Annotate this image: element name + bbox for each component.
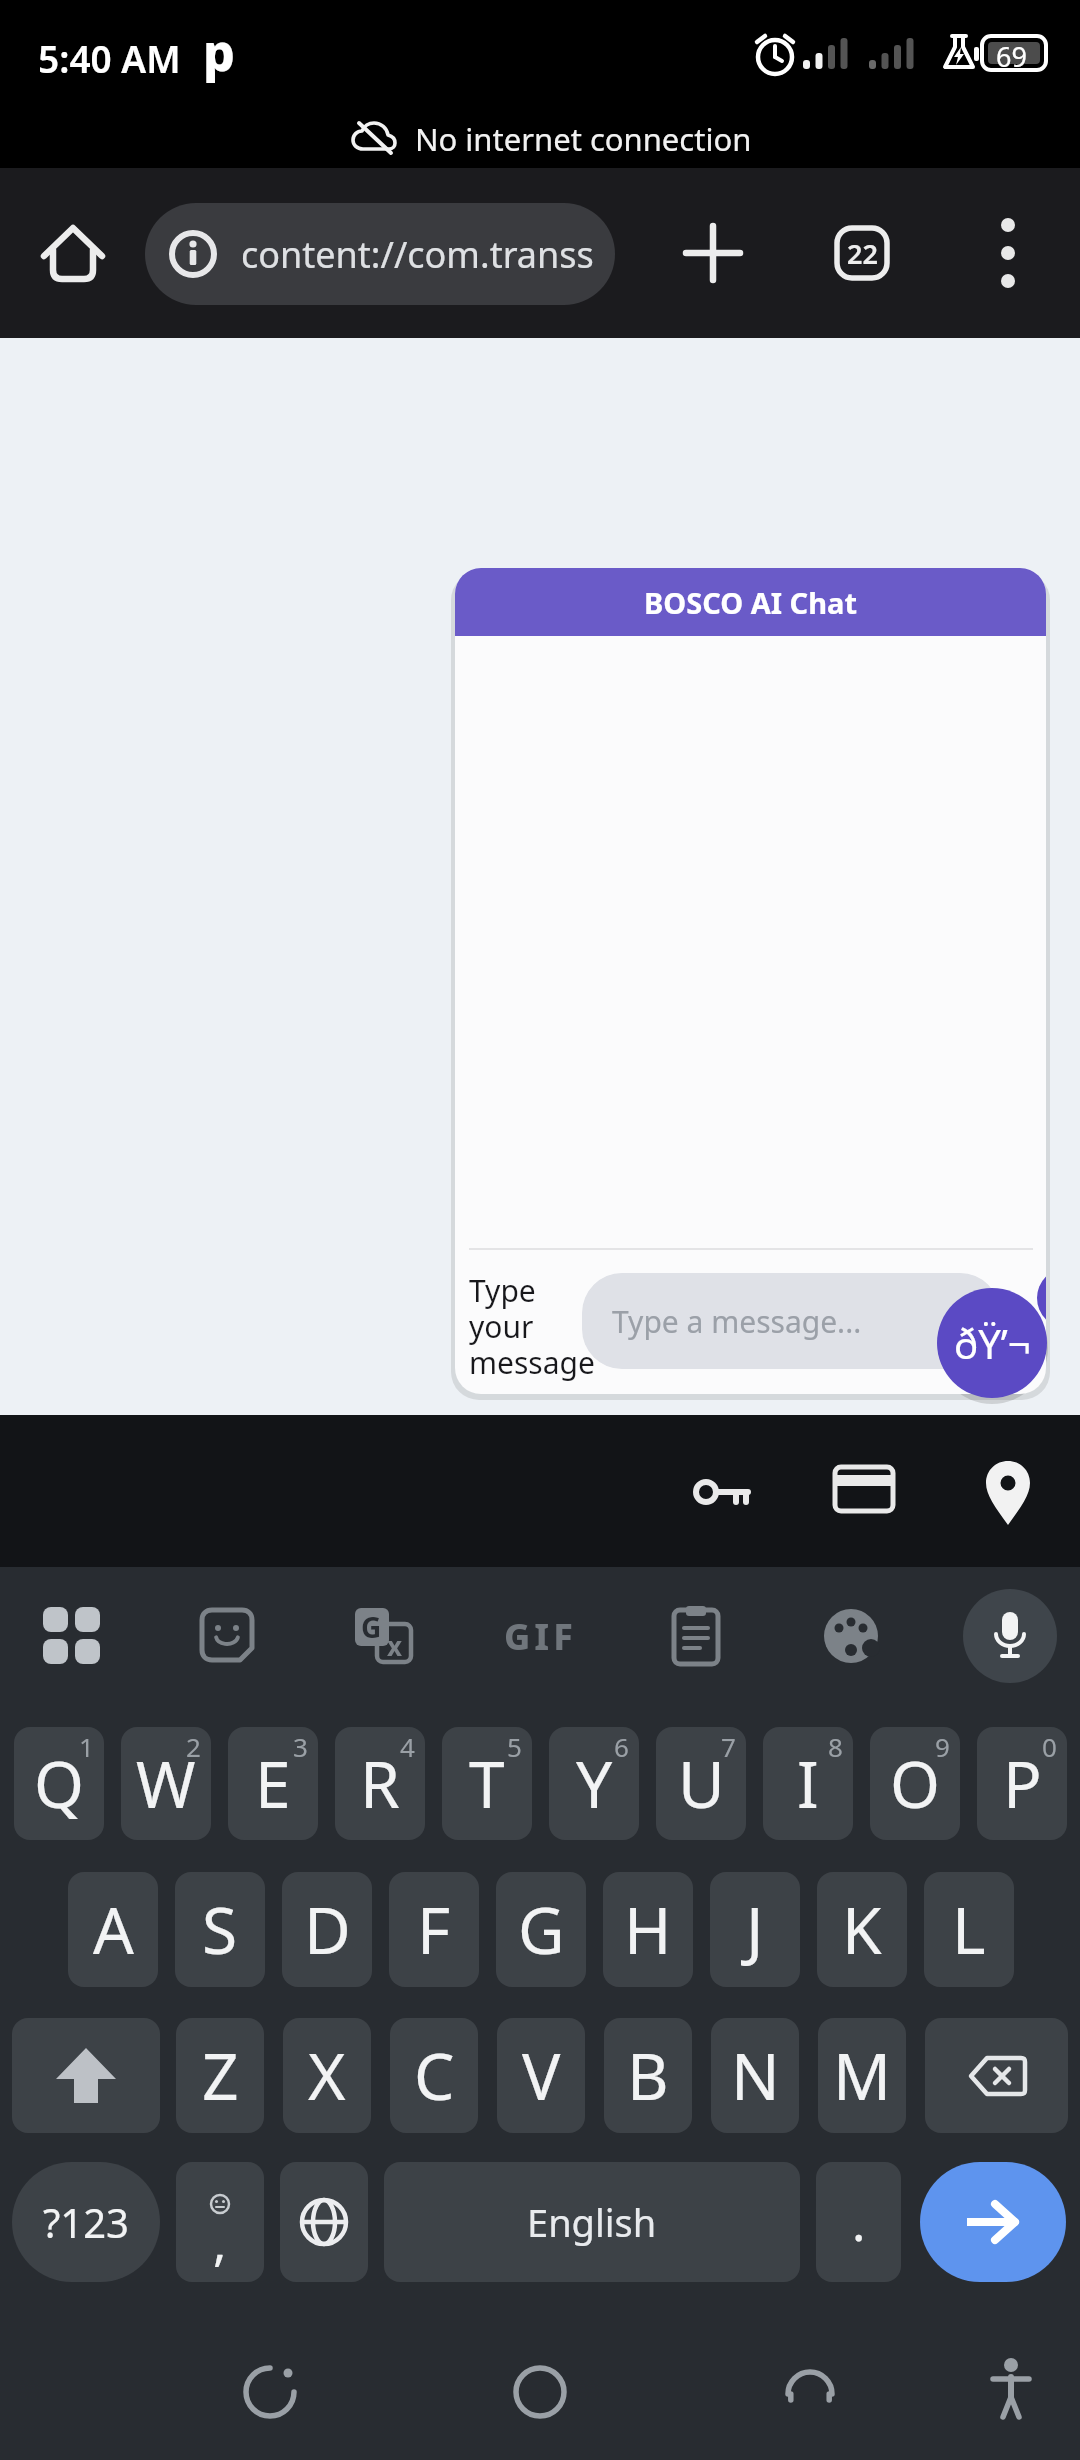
staticText: 2 (186, 1729, 201, 1764)
button[interactable]: 22 (835, 226, 889, 280)
staticText: 7 (721, 1729, 736, 1764)
button[interactable] (690, 1459, 756, 1525)
staticText: Type a message... (612, 1301, 862, 1342)
staticText: 22 (847, 235, 878, 272)
staticText: , (213, 2208, 227, 2276)
button[interactable]: P (977, 1727, 1067, 1840)
button[interactable]: V (497, 2018, 585, 2133)
button[interactable]: C (390, 2018, 478, 2133)
staticText: 1 (79, 1729, 94, 1764)
staticText: C (414, 2032, 455, 2119)
button[interactable] (920, 2162, 1066, 2282)
staticText: E (255, 1740, 291, 1827)
staticText: GIF (504, 1612, 577, 1660)
staticText: N (731, 2032, 780, 2119)
staticText: J (746, 1886, 764, 1973)
staticText: content://com.transs (241, 230, 605, 279)
button[interactable]: Y (549, 1727, 639, 1840)
button[interactable]: G (496, 1872, 586, 1987)
staticText: P (1003, 1740, 1042, 1827)
staticText: G (361, 1608, 382, 1646)
button[interactable]: D (282, 1872, 372, 1987)
button[interactable]: content://com.transs (145, 203, 615, 305)
staticText: A (93, 1886, 134, 1973)
button[interactable]: L (924, 1872, 1014, 1987)
button[interactable] (196, 1604, 260, 1668)
button[interactable]: X (283, 2018, 371, 2133)
staticText: No internet connection (415, 118, 752, 160)
button[interactable]: , (176, 2162, 264, 2282)
staticText: G (518, 1886, 565, 1973)
button[interactable]: T (442, 1727, 532, 1840)
staticText: p (203, 18, 235, 86)
button[interactable]: W (121, 1727, 211, 1840)
button[interactable] (778, 2360, 842, 2424)
staticText: D (304, 1886, 351, 1973)
button[interactable]: ðŸ’¬ (937, 1288, 1047, 1398)
staticText: ?123 (43, 2195, 129, 2249)
button[interactable] (664, 1604, 728, 1668)
staticText: W (136, 1740, 196, 1827)
button[interactable]: Z (176, 2018, 264, 2133)
staticText: ðŸ’¬ (954, 1316, 1031, 1370)
staticText: R (360, 1740, 400, 1827)
button[interactable]: Q (14, 1727, 104, 1840)
staticText: X (308, 2032, 346, 2119)
button[interactable] (680, 220, 746, 286)
staticText: . (852, 2188, 866, 2256)
button[interactable]: N (711, 2018, 799, 2133)
button[interactable]: K (817, 1872, 907, 1987)
button[interactable] (831, 1463, 897, 1519)
staticText: 8 (828, 1729, 843, 1764)
button[interactable] (975, 1455, 1041, 1531)
button[interactable]: S (175, 1872, 265, 1987)
staticText: O (890, 1740, 940, 1827)
button[interactable]: Type a message... (582, 1273, 1000, 1369)
button[interactable]: A (68, 1872, 158, 1987)
button[interactable] (12, 2018, 160, 2133)
button[interactable] (280, 2162, 368, 2282)
button[interactable]: U (656, 1727, 746, 1840)
button[interactable]: O (870, 1727, 960, 1840)
button[interactable]: F (389, 1872, 479, 1987)
button[interactable]: GIF (500, 1612, 580, 1660)
button[interactable]: R (335, 1727, 425, 1840)
button[interactable]: English (384, 2162, 800, 2282)
button[interactable]: G (351, 1604, 415, 1668)
staticText: 9 (935, 1729, 950, 1764)
button[interactable]: B (604, 2018, 692, 2133)
staticText: Type your message (469, 1270, 597, 1383)
button[interactable]: . (816, 2162, 901, 2282)
staticText: x (387, 1628, 403, 1663)
button[interactable]: ?123 (12, 2162, 160, 2282)
button[interactable] (40, 1604, 104, 1668)
button[interactable]: M (818, 2018, 906, 2133)
staticText: 5 (507, 1729, 522, 1764)
button[interactable]: I (763, 1727, 853, 1840)
button[interactable]: H (603, 1872, 693, 1987)
staticText: Q (34, 1740, 84, 1827)
button[interactable] (238, 2360, 302, 2424)
button[interactable] (819, 1604, 883, 1668)
button[interactable] (925, 2018, 1068, 2133)
staticText: 5:40 AM (38, 33, 181, 83)
staticText: Z (202, 2032, 239, 2119)
button[interactable] (40, 220, 106, 286)
button[interactable]: E (228, 1727, 318, 1840)
staticText: I (797, 1740, 819, 1827)
button[interactable] (508, 2360, 572, 2424)
staticText: 69 (996, 38, 1027, 75)
staticText: 4 (400, 1729, 415, 1764)
staticText: Y (576, 1740, 613, 1827)
button[interactable] (979, 2355, 1043, 2427)
staticText: 3 (293, 1729, 308, 1764)
staticText: M (833, 2032, 892, 2119)
button[interactable]: J (710, 1872, 800, 1987)
staticText: BOSCO AI Chat (644, 583, 858, 622)
staticText: F (417, 1886, 451, 1973)
button[interactable] (963, 1589, 1057, 1683)
staticText: 0 (1042, 1729, 1057, 1764)
button[interactable] (975, 220, 1041, 286)
staticText: H (624, 1886, 672, 1973)
staticText: B (627, 2032, 669, 2119)
